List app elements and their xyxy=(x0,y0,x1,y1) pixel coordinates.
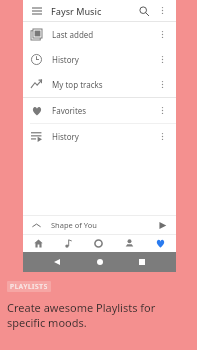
staticText: Faysr Music xyxy=(51,5,102,17)
button[interactable]: Favorites xyxy=(23,98,176,123)
button[interactable]: History xyxy=(23,47,176,72)
staticText: History xyxy=(52,131,79,142)
button[interactable]: Expand player xyxy=(23,216,176,234)
button[interactable]: Artists xyxy=(114,235,145,252)
button[interactable]: More options xyxy=(156,4,169,17)
button[interactable]: More options for History xyxy=(156,130,169,143)
button[interactable]: Songs xyxy=(53,235,83,252)
button[interactable]: Open navigation menu xyxy=(30,4,43,17)
button[interactable]: Search xyxy=(137,4,150,17)
button[interactable]: Last added xyxy=(23,22,176,47)
button[interactable]: More options for Favorites xyxy=(156,104,169,117)
button[interactable]: Albums xyxy=(83,235,114,252)
button[interactable]: More options for My top tracks xyxy=(156,78,169,91)
button[interactable]: Home xyxy=(92,254,108,270)
button[interactable]: Play xyxy=(157,220,168,231)
button[interactable]: Home xyxy=(23,235,53,252)
staticText: History xyxy=(52,54,79,65)
button[interactable]: Expand player xyxy=(31,220,42,231)
staticText: My top tracks xyxy=(52,79,103,90)
button[interactable]: My top tracks xyxy=(23,72,176,97)
staticText: PLAYLISTS xyxy=(10,282,48,291)
button[interactable]: Back xyxy=(49,254,65,270)
button[interactable]: More options for History xyxy=(156,53,169,66)
staticText: Last added xyxy=(52,29,94,40)
staticText: Create awesome Playlists for specific mo… xyxy=(7,300,187,330)
button[interactable]: Favorites xyxy=(145,235,176,252)
button[interactable]: More options for Last added xyxy=(156,28,169,41)
staticText: Shape of You xyxy=(51,220,97,230)
button[interactable]: Recents xyxy=(134,254,150,270)
staticText: Favorites xyxy=(52,105,87,116)
button[interactable]: History xyxy=(23,124,176,149)
